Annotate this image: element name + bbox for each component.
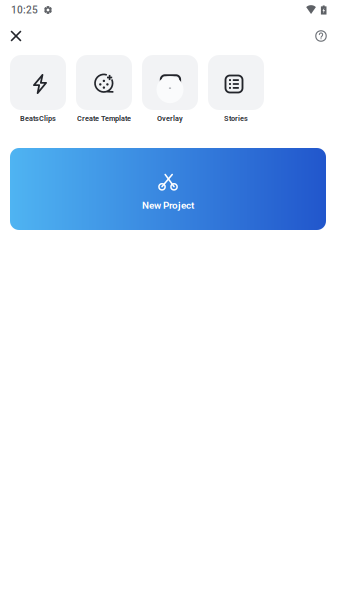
button[interactable]: Help [305, 24, 336, 48]
button[interactable]: New Project [10, 148, 326, 230]
button[interactable]: Overlay [137, 55, 203, 127]
staticText: Overlay [157, 114, 183, 123]
button[interactable]: BeatsClips [5, 55, 71, 127]
button[interactable]: Close [0, 24, 31, 48]
staticText: BeatsClips [20, 114, 56, 123]
button[interactable]: Stories [203, 55, 269, 127]
staticText: Create Template [77, 114, 131, 123]
staticText: Stories [224, 114, 248, 123]
staticText: New Project [142, 200, 194, 211]
staticText: 10:25 [11, 4, 38, 16]
button[interactable]: Create Template [71, 55, 137, 127]
